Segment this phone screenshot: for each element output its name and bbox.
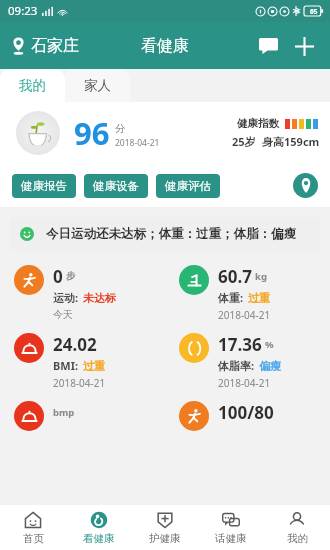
button[interactable]: 健康报告: [12, 174, 76, 198]
button[interactable]: 护健康: [132, 505, 198, 550]
staticText: 100/80: [218, 401, 274, 424]
staticText: 65: [310, 7, 318, 16]
staticText: 我的: [287, 532, 308, 545]
button[interactable]: 60.7: [165, 259, 330, 327]
staticText: kg: [255, 270, 267, 283]
staticText: bmp: [53, 406, 75, 419]
staticText: 17.36: [218, 333, 262, 356]
staticText: 过重: [83, 359, 105, 373]
staticText: 今天: [53, 308, 73, 321]
staticText: 2018-04-21: [218, 308, 271, 322]
button[interactable]: 健康评估: [156, 174, 220, 198]
staticText: 健康设备: [93, 179, 139, 193]
staticText: 体重:: [218, 290, 244, 305]
staticText: 看健康: [83, 532, 115, 545]
staticText: 我的: [19, 77, 46, 94]
button[interactable]: 首页: [0, 505, 66, 550]
button[interactable]: 家人: [65, 69, 130, 102]
button[interactable]: 今日运动还未达标；体重：过重；体脂：偏瘦: [10, 217, 320, 251]
staticText: 运动:: [53, 290, 79, 305]
staticText: %: [265, 338, 274, 351]
staticText: 过重: [248, 291, 270, 305]
button[interactable]: Location: [293, 173, 318, 198]
staticText: 健康报告: [21, 179, 67, 193]
staticText: 2018-04-21: [115, 137, 160, 149]
button[interactable]: 100/80: [165, 395, 330, 463]
staticText: BMI:: [53, 358, 79, 373]
staticText: 25岁: [232, 134, 256, 149]
button[interactable]: 看健康: [66, 505, 132, 550]
staticText: 看健康: [141, 36, 189, 56]
staticText: 2018-04-21: [218, 376, 271, 390]
staticText: 身高159cm: [262, 134, 320, 149]
staticText: 09:23: [8, 3, 38, 19]
staticText: 今日运动还未达标；体重：过重；体脂：偏瘦: [46, 226, 310, 242]
button[interactable]: 健康设备: [84, 174, 148, 198]
staticText: 2018-04-21: [53, 376, 106, 390]
button[interactable]: Messages: [252, 30, 284, 62]
staticText: 家人: [84, 77, 111, 94]
staticText: 健康指数: [237, 117, 279, 130]
button[interactable]: 17.36: [165, 327, 330, 395]
button[interactable]: 0: [0, 259, 165, 327]
staticText: 石家庄: [31, 36, 79, 56]
staticText: 话健康: [215, 532, 247, 545]
button[interactable]: Add: [288, 30, 320, 62]
staticText: 0: [53, 265, 63, 288]
staticText: 偏瘦: [259, 359, 281, 373]
button[interactable]: 24.02: [0, 327, 165, 395]
staticText: 分: [115, 122, 126, 135]
button[interactable]: 我的: [0, 69, 65, 102]
staticText: 60.7: [218, 265, 252, 288]
staticText: 未达标: [83, 291, 116, 305]
staticText: 护健康: [149, 532, 181, 545]
staticText: 体脂率:: [218, 358, 255, 373]
button[interactable]: 话健康: [198, 505, 264, 550]
button[interactable]: bmp: [0, 395, 165, 463]
staticText: 96: [74, 112, 110, 154]
staticText: 步: [66, 270, 76, 282]
staticText: 首页: [23, 532, 44, 545]
button[interactable]: 我的: [264, 505, 330, 550]
button[interactable]: 石家庄: [11, 36, 79, 56]
staticText: 健康评估: [165, 179, 211, 193]
staticText: 24.02: [53, 333, 97, 356]
